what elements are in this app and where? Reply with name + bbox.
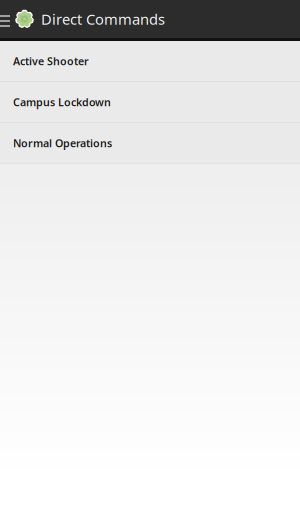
staticText: Direct Commands (41, 9, 165, 29)
button[interactable]: Open navigation menu (0, 0, 11, 38)
staticText: Normal Operations (13, 136, 112, 150)
button[interactable]: Active Shooter (0, 41, 300, 82)
staticText: Active Shooter (13, 54, 89, 68)
staticText: Campus Lockdown (13, 95, 111, 109)
button[interactable]: Normal Operations (0, 123, 300, 164)
button[interactable]: Campus Lockdown (0, 82, 300, 123)
